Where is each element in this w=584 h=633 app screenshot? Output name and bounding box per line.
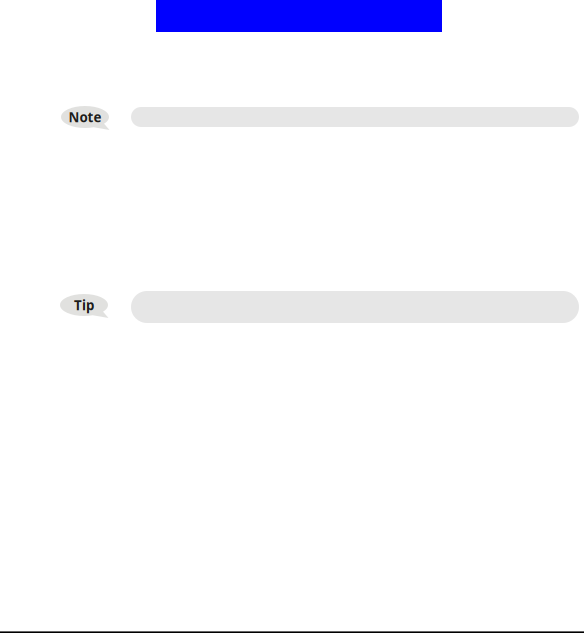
button[interactable]: Tip [60,294,110,319]
staticText: Note [68,108,101,126]
staticText: Tip [74,296,94,314]
button[interactable]: Note [61,106,111,131]
